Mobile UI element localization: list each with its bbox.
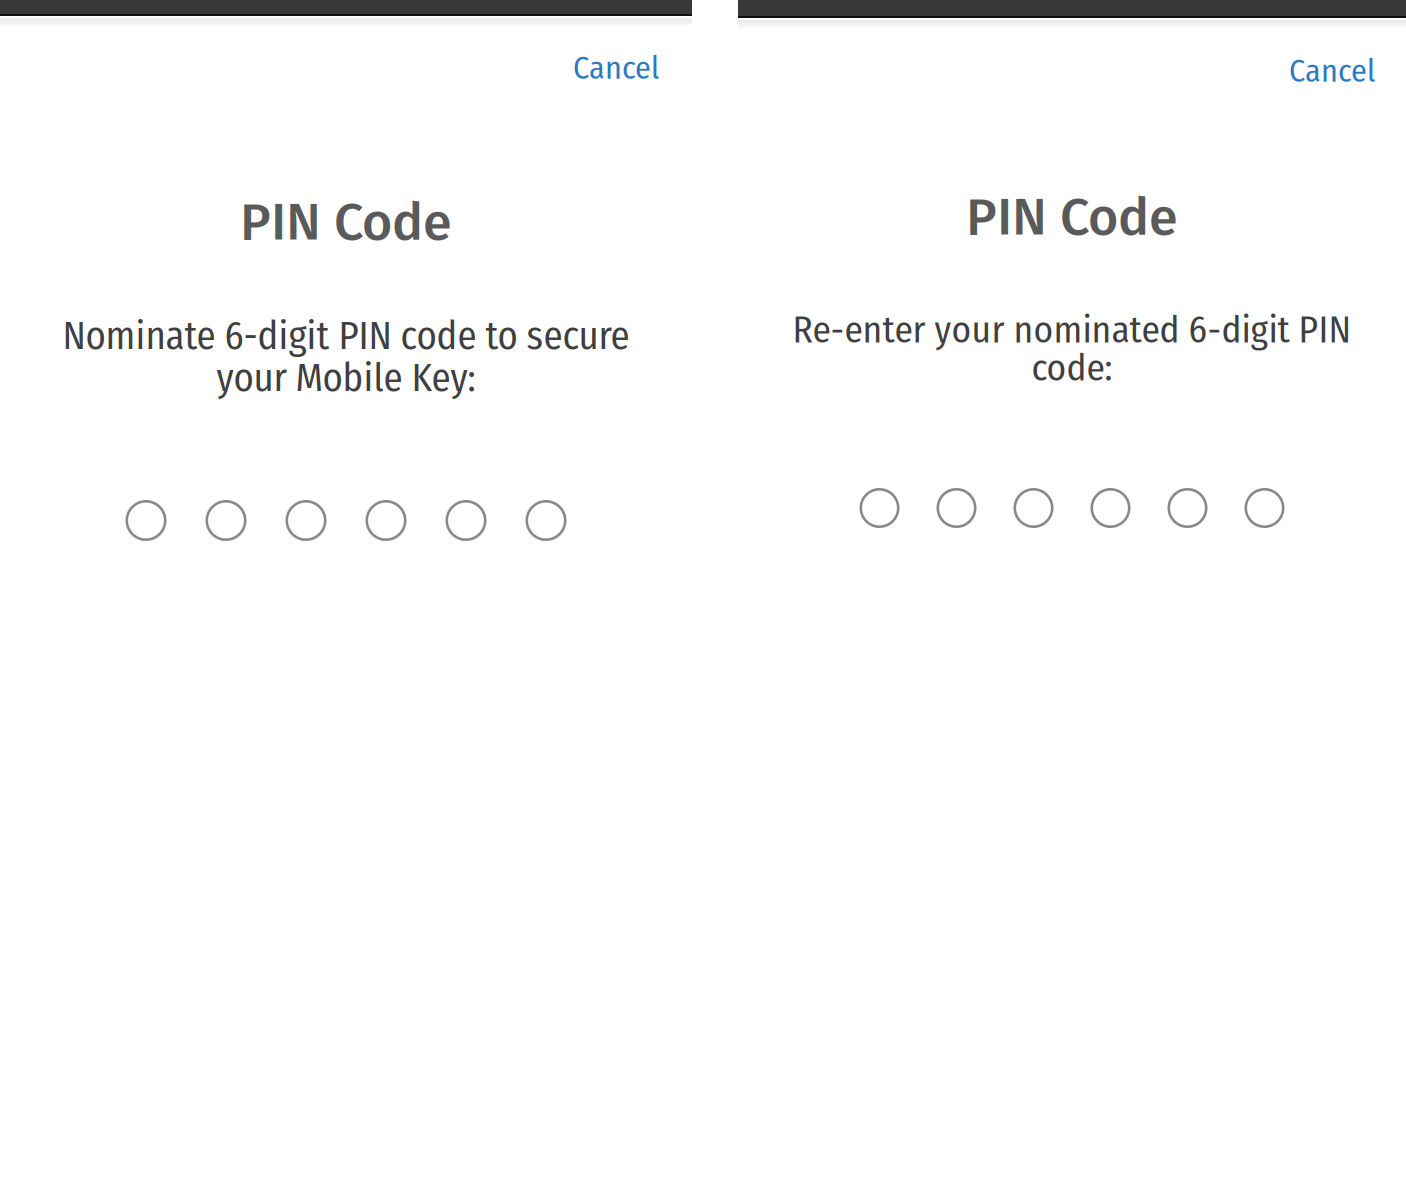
staticText: code:: [1031, 346, 1112, 390]
staticText: Nominate 6-digit PIN code to secure: [62, 313, 629, 359]
button[interactable]: PIN code entry: [738, 488, 1406, 528]
button[interactable]: Cancel: [738, 51, 1375, 91]
staticText: your Mobile Key:: [216, 355, 475, 401]
staticText: PIN Code: [240, 191, 452, 253]
staticText: Re-enter your nominated 6-digit PIN: [792, 308, 1351, 352]
button[interactable]: PIN code entry: [0, 500, 692, 541]
button[interactable]: Cancel: [0, 48, 659, 88]
staticText: Cancel: [1289, 52, 1375, 90]
staticText: Cancel: [573, 49, 659, 87]
staticText: PIN Code: [966, 186, 1178, 248]
